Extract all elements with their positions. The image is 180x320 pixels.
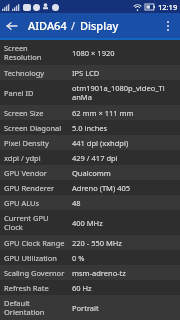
staticText: IPS LCD bbox=[72, 68, 100, 78]
button[interactable]: GPU Vendor bbox=[0, 165, 180, 180]
staticText: Current GPU Clock bbox=[4, 213, 49, 233]
staticText: Screen Size bbox=[4, 108, 44, 118]
staticText: 0 % bbox=[72, 253, 85, 263]
staticText: Portrait bbox=[72, 303, 99, 313]
staticText: 400 MHz bbox=[72, 218, 103, 228]
button[interactable]: Screen Size bbox=[0, 105, 180, 120]
staticText: xdpi / ydpi bbox=[4, 153, 41, 163]
button[interactable]: GPU ALUs bbox=[0, 195, 180, 210]
button[interactable]: Refresh Rate bbox=[0, 280, 180, 295]
button[interactable]: Screen Resolution bbox=[0, 40, 180, 65]
staticText: GPU ALUs bbox=[4, 198, 40, 208]
staticText: Screen Resolution bbox=[4, 43, 42, 63]
staticText: 429 / 417 dpi bbox=[72, 153, 118, 163]
staticText: GPU Renderer bbox=[4, 183, 55, 193]
staticText: GPU Utilization bbox=[4, 253, 57, 263]
staticText: Display bbox=[80, 18, 119, 33]
button[interactable]: GPU Renderer bbox=[0, 180, 180, 195]
staticText: / bbox=[71, 18, 76, 33]
button[interactable]: Pixel Density bbox=[0, 135, 180, 150]
button[interactable]: GPU Utilization bbox=[0, 250, 180, 265]
staticText: 12:19 bbox=[158, 2, 178, 12]
button[interactable]: Default Orientation bbox=[0, 295, 180, 320]
button[interactable]: Screen Diagonal bbox=[0, 120, 180, 135]
staticText: 220 - 550 MHz bbox=[72, 238, 122, 248]
staticText: Screen Diagonal bbox=[4, 123, 62, 133]
staticText: Panel ID bbox=[4, 88, 34, 98]
button[interactable]: More options bbox=[156, 14, 180, 38]
button[interactable]: Panel ID bbox=[0, 80, 180, 105]
button[interactable]: xdpi / ydpi bbox=[0, 150, 180, 165]
staticText: Default Orientation bbox=[4, 298, 45, 318]
staticText: Refresh Rate bbox=[4, 283, 49, 293]
staticText: Scaling Governor bbox=[4, 268, 65, 278]
staticText: 1080 × 1920 bbox=[72, 48, 115, 58]
staticText: otm1901a_1080p_video_Ti anMa bbox=[72, 83, 165, 103]
staticText: 62 mm × 111 mm bbox=[72, 108, 134, 118]
staticText: Pixel Density bbox=[4, 138, 49, 148]
staticText: Technology bbox=[4, 68, 45, 78]
button[interactable]: GPU Clock Range bbox=[0, 235, 180, 250]
staticText: AIDA64 bbox=[28, 18, 67, 33]
staticText: Adreno (TM) 405 bbox=[72, 183, 130, 193]
staticText: GPU Vendor bbox=[4, 168, 47, 178]
button[interactable]: Technology bbox=[0, 65, 180, 80]
staticText: 5.0 inches bbox=[72, 123, 108, 133]
staticText: 441 dpi (xxhdpi) bbox=[72, 138, 129, 148]
staticText: GPU Clock Range bbox=[4, 238, 65, 248]
button[interactable]: Scaling Governor bbox=[0, 265, 180, 280]
button[interactable]: Current GPU Clock bbox=[0, 210, 180, 235]
staticText: Qualcomm bbox=[72, 168, 111, 178]
button[interactable]: Back bbox=[0, 14, 24, 38]
staticText: msm-adreno-tz bbox=[72, 268, 126, 278]
staticText: 48 bbox=[72, 198, 81, 208]
staticText: 60 Hz bbox=[72, 283, 92, 293]
